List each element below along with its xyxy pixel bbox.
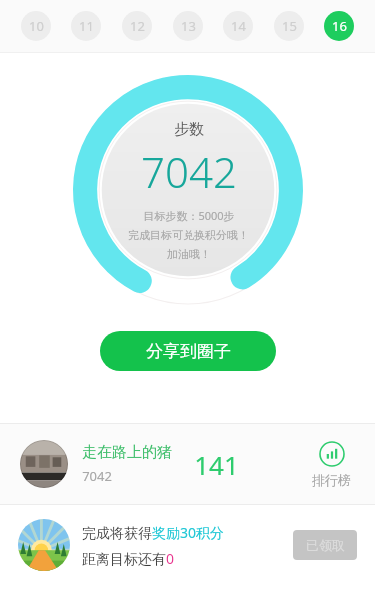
staticText: 13	[181, 17, 196, 35]
staticText: 10	[29, 17, 44, 35]
staticText: 步数	[174, 120, 204, 139]
staticText: 12	[130, 17, 145, 35]
button[interactable]: 排行榜	[308, 437, 355, 492]
button[interactable]: 12	[122, 11, 152, 41]
staticText: 15	[282, 17, 297, 35]
button[interactable]: 11	[71, 11, 101, 41]
staticText: 7042	[82, 467, 112, 485]
staticText: 11	[79, 17, 94, 35]
button[interactable]: 10	[21, 11, 51, 41]
staticText: 已领取	[306, 537, 345, 553]
button[interactable]: 14	[223, 11, 253, 41]
staticText: 完成目标可兑换积分哦！	[128, 228, 249, 242]
staticText: 完成将获得奖励30积分	[82, 523, 225, 542]
staticText: 分享到圈子	[146, 341, 231, 362]
staticText: 距离目标还有0	[82, 549, 175, 568]
button[interactable]: 已领取	[293, 530, 357, 560]
button[interactable]: 13	[173, 11, 203, 41]
button[interactable]: 分享到圈子	[100, 331, 276, 371]
staticText: 14	[231, 17, 246, 35]
staticText: 加油哦！	[167, 247, 211, 261]
staticText: 16	[332, 17, 347, 35]
staticText: 7042	[141, 143, 237, 200]
button[interactable]: 15	[274, 11, 304, 41]
button[interactable]: 16	[324, 11, 354, 41]
staticText: 排行榜	[312, 472, 351, 488]
staticText: 141	[194, 447, 239, 482]
staticText: 走在路上的猪	[82, 443, 172, 462]
button[interactable]: 走在路上的猪	[0, 424, 375, 504]
staticText: 目标步数：5000步	[143, 208, 235, 223]
